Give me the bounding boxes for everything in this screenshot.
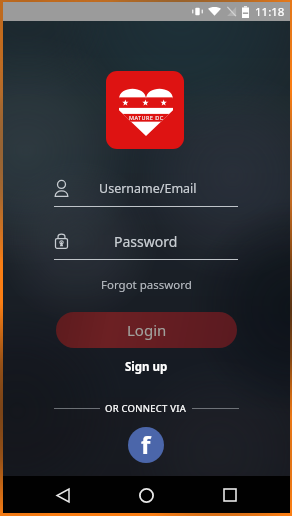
staticText: Password <box>114 232 178 251</box>
button[interactable]: Password <box>54 227 238 260</box>
button[interactable]: Forgot password <box>101 277 192 293</box>
button[interactable]: Sign up <box>125 359 168 375</box>
button[interactable]: Recent apps <box>214 479 246 511</box>
button[interactable]: Continue with Facebook <box>128 427 164 463</box>
button[interactable]: Username/Email <box>54 174 238 207</box>
button[interactable]: Login <box>56 312 237 348</box>
staticText: Login <box>127 320 167 340</box>
staticText: 11:18 <box>255 4 285 20</box>
staticText: Username/Email <box>99 180 197 197</box>
button[interactable]: Back <box>47 479 79 511</box>
staticText: f <box>141 428 151 461</box>
staticText: MATURE DC <box>129 114 164 121</box>
button[interactable]: Home <box>130 479 162 511</box>
staticText: OR CONNECT VIA <box>105 402 187 415</box>
